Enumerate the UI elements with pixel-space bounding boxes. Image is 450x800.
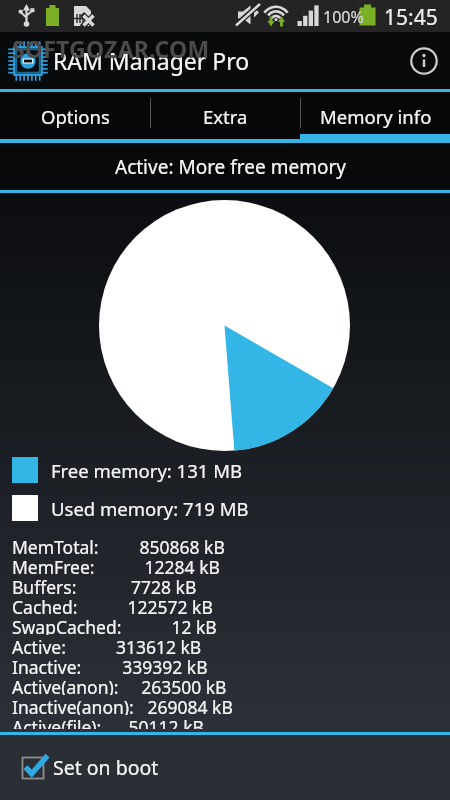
staticText: 15:45 (384, 3, 438, 32)
button[interactable]: Free memory: 131 MB (12, 457, 242, 483)
staticText: SOFTGOZAR.COM (12, 33, 210, 64)
staticText: Options (41, 104, 110, 129)
button[interactable]: Set on boot (0, 735, 450, 800)
staticText: Active: 313612 kB (12, 635, 202, 655)
button[interactable]: Options (0, 92, 150, 134)
staticText: Extra (203, 104, 248, 129)
staticText: Active(file): 50112 kB (12, 715, 204, 729)
staticText: MemFree: 12284 kB (12, 555, 220, 575)
button[interactable]: Extra (151, 92, 300, 134)
staticText: Set on boot (53, 754, 159, 781)
staticText: Active: More free memory (115, 154, 346, 180)
button[interactable]: Used memory: 719 MB (12, 495, 249, 521)
staticText: Free memory: 131 MB (51, 458, 242, 483)
staticText: SwapCached: 12 kB (12, 615, 217, 635)
staticText: MemTotal: 850868 kB (12, 535, 225, 555)
staticText: 100% (323, 6, 364, 28)
staticText: Inactive: 339392 kB (12, 655, 208, 675)
staticText: Memory info (320, 104, 432, 129)
button[interactable]: Memory info (301, 92, 450, 134)
staticText: Used memory: 719 MB (51, 496, 249, 521)
button[interactable]: About (398, 35, 450, 87)
staticText: Buffers: 7728 kB (12, 575, 197, 595)
staticText: RAM Manager Pro (53, 45, 250, 76)
staticText: Inactive(anon): 269084 kB (12, 695, 233, 715)
staticText: Cached: 122572 kB (12, 595, 213, 615)
staticText: Active(anon): 263500 kB (12, 675, 227, 695)
